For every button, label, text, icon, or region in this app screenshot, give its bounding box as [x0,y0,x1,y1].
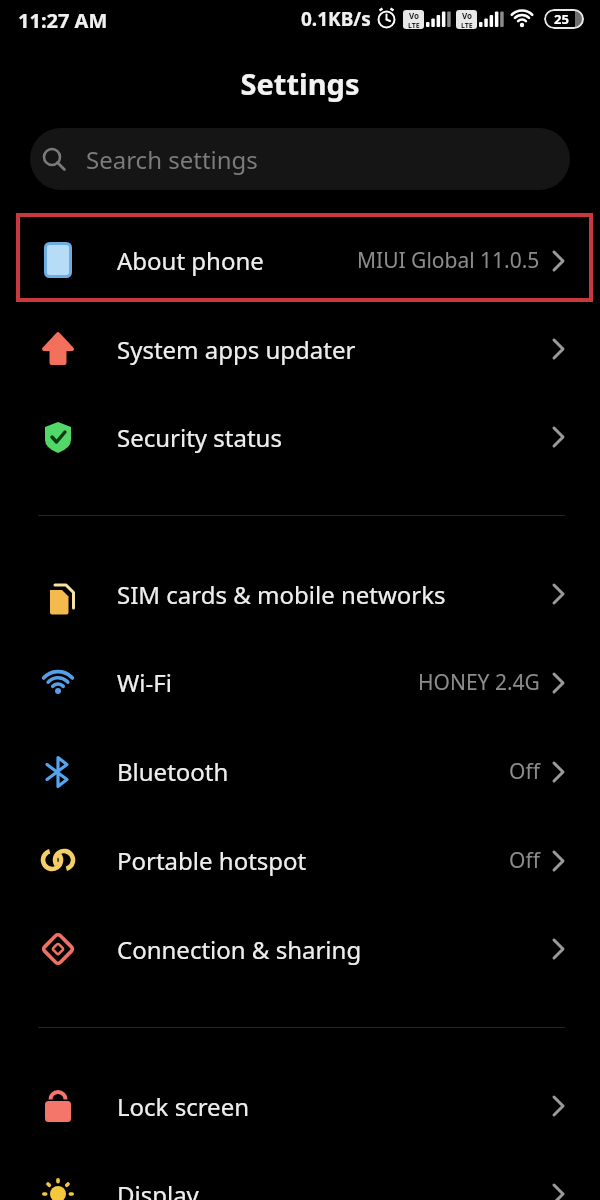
staticText: SIM cards & mobile networks [117,578,446,611]
staticText: Display [117,1178,199,1200]
button[interactable]: Lock screen [0,1062,600,1150]
staticText: LTE [408,21,420,29]
staticText: System apps updater [117,333,356,366]
button[interactable]: System apps updater [0,305,600,393]
staticText: Vo [462,10,473,21]
button[interactable]: SIM cards & mobile networks [0,550,600,638]
staticText: About phone [117,244,264,277]
staticText: Connection & sharing [117,933,362,966]
button[interactable]: Display [0,1150,600,1200]
staticText: Off [509,757,540,786]
button[interactable]: About phone [0,216,600,304]
staticText: Off [509,846,540,875]
staticText: Vo [409,10,420,21]
staticText: Lock screen [117,1090,250,1123]
button[interactable]: Connection & sharing [0,905,600,993]
staticText: 0.1KB/s [301,6,371,32]
staticText: MIUI Global 11.0.5 [357,246,540,275]
staticText: Bluetooth [117,755,229,788]
staticText: Wi-Fi [117,666,172,699]
button[interactable]: Wi-Fi [0,638,600,726]
staticText: 11:27 AM [18,7,108,34]
staticText: LTE [461,21,473,29]
button[interactable]: Bluetooth [0,727,600,815]
staticText: Security status [117,421,282,454]
button[interactable]: Portable hotspot [0,816,600,904]
staticText: Settings [0,64,600,103]
staticText: Search settings [86,143,258,176]
button[interactable]: Security status [0,393,600,481]
staticText: 25 [554,10,569,28]
staticText: HONEY 2.4G [418,668,540,697]
button[interactable]: Search settings [30,128,570,190]
staticText: Portable hotspot [117,844,307,877]
